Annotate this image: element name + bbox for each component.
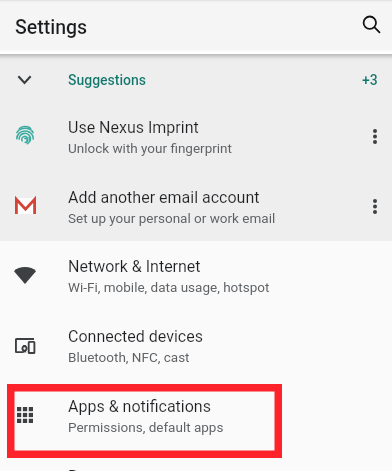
- button[interactable]: Battery: [0, 451, 392, 471]
- staticText: Battery: [68, 467, 119, 471]
- button[interactable]: More options: [352, 183, 392, 231]
- button[interactable]: Use Nexus Imprint: [0, 102, 392, 172]
- button[interactable]: Search: [344, 1, 392, 49]
- button[interactable]: Apps & notifications: [0, 381, 392, 451]
- staticText: Apps & notifications: [68, 397, 211, 416]
- staticText: Wi-Fi, mobile, data usage, hotspot: [68, 279, 270, 295]
- staticText: Bluetooth, NFC, cast: [68, 349, 190, 365]
- staticText: Unlock with your fingerprint: [68, 140, 232, 156]
- staticText: Suggestions: [68, 72, 147, 88]
- staticText: Connected devices: [68, 327, 203, 346]
- button[interactable]: More options: [352, 113, 392, 161]
- button[interactable]: Network & Internet: [0, 241, 392, 311]
- staticText: Add another email account: [68, 188, 260, 207]
- button[interactable]: Suggestions: [0, 60, 392, 100]
- button[interactable]: Connected devices: [0, 311, 392, 381]
- staticText: Network & Internet: [68, 257, 201, 276]
- staticText: Set up your personal or work email: [68, 210, 276, 226]
- staticText: +3: [362, 72, 378, 88]
- staticText: Permissions, default apps: [68, 419, 224, 435]
- staticText: Settings: [15, 16, 88, 39]
- button[interactable]: Add another email account: [0, 172, 392, 242]
- staticText: Use Nexus Imprint: [68, 118, 199, 137]
